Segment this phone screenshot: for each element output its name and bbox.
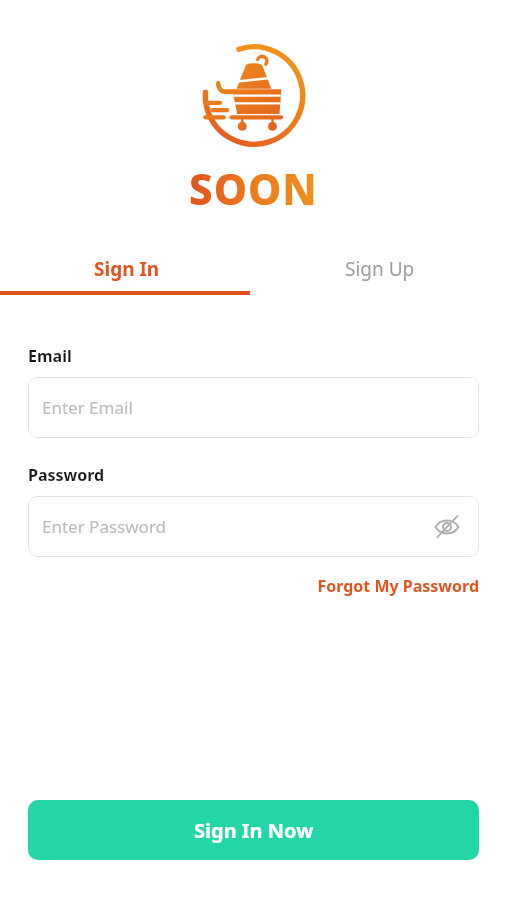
staticText: Enter Email bbox=[42, 396, 133, 419]
staticText: Email bbox=[28, 345, 72, 367]
button[interactable]: Enter Password bbox=[28, 496, 479, 557]
button[interactable]: Sign In bbox=[0, 247, 253, 291]
staticText: Enter Password bbox=[42, 515, 167, 538]
staticText: Sign Up bbox=[345, 256, 415, 282]
button[interactable]: Show password bbox=[425, 505, 469, 549]
button[interactable]: Forgot My Password bbox=[317, 571, 479, 601]
button[interactable]: Sign Up bbox=[253, 247, 507, 291]
staticText: Forgot My Password bbox=[317, 575, 479, 597]
staticText: Password bbox=[28, 464, 105, 486]
button[interactable]: Enter Email bbox=[28, 377, 479, 438]
staticText: Sign In Now bbox=[194, 817, 314, 844]
staticText: Sign In bbox=[94, 256, 160, 282]
staticText: SOON bbox=[189, 160, 318, 217]
button[interactable]: Sign In Now bbox=[28, 800, 479, 860]
